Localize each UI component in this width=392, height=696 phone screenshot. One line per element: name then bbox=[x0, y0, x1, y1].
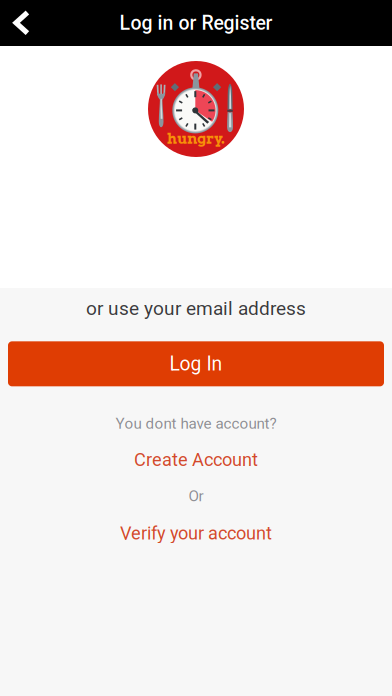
staticText: Log In bbox=[169, 352, 222, 375]
button[interactable]: Create Account bbox=[134, 449, 258, 470]
staticText: Create Account bbox=[134, 449, 258, 470]
staticText: You dont have account? bbox=[115, 415, 276, 432]
staticText: Log in or Register bbox=[119, 12, 272, 34]
staticText: or use your email address bbox=[86, 297, 306, 320]
staticText: hungry. bbox=[167, 130, 225, 147]
staticText: Verify your account bbox=[120, 523, 272, 544]
button[interactable]: Log In bbox=[8, 341, 384, 386]
button[interactable]: Back bbox=[0, 0, 44, 46]
button[interactable]: Verify your account bbox=[120, 523, 272, 544]
staticText: Or bbox=[188, 487, 203, 505]
